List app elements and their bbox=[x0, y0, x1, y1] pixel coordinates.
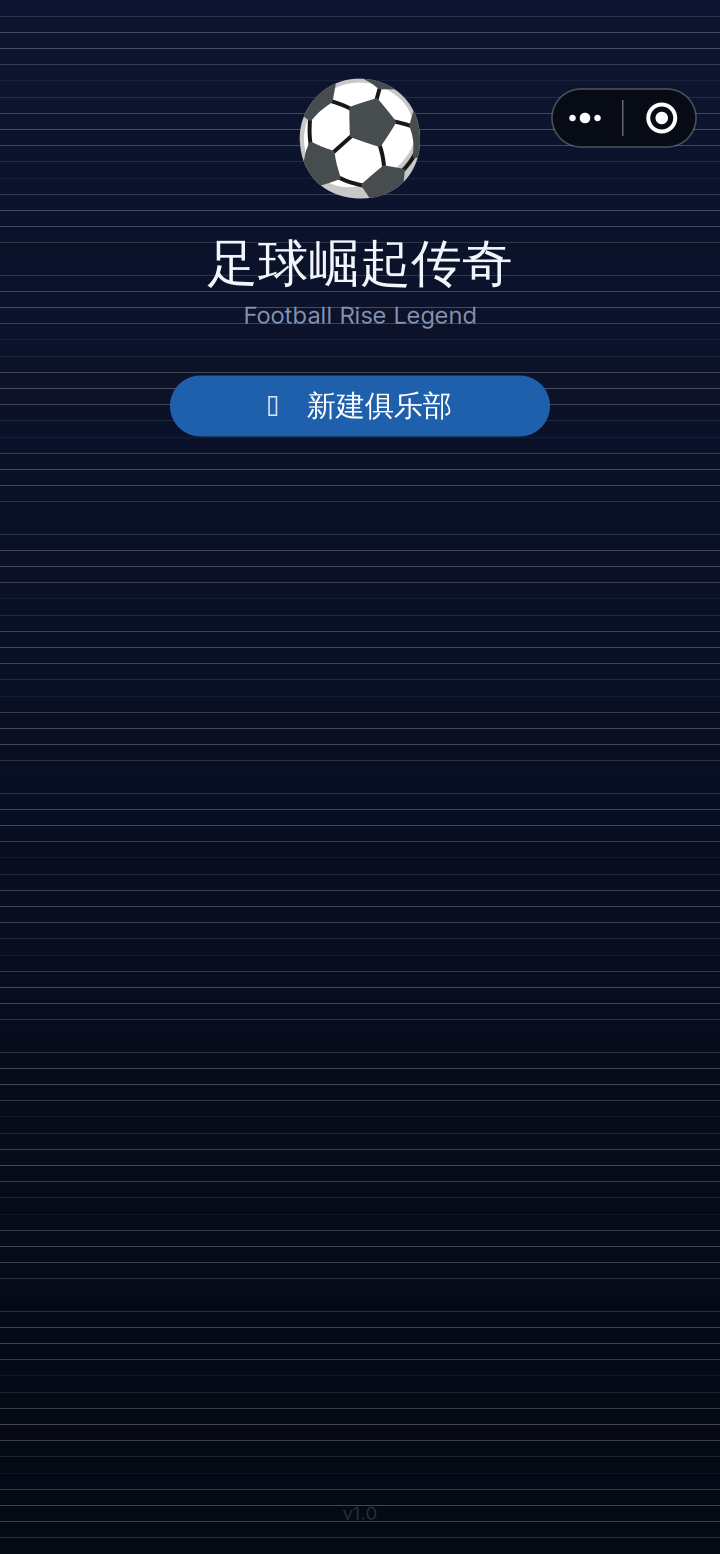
staticText: v1.0 bbox=[342, 1502, 377, 1524]
staticText: ⚽ bbox=[292, 76, 428, 201]
staticText: Football Rise Legend bbox=[243, 300, 476, 329]
button[interactable]: 新建俱乐部 bbox=[170, 375, 550, 436]
button[interactable]: More bbox=[552, 89, 622, 147]
staticText: 足球崛起传奇 bbox=[207, 232, 513, 296]
button[interactable]: Close mini program bbox=[623, 89, 696, 147]
staticText: 新建俱乐部 bbox=[307, 387, 452, 424]
